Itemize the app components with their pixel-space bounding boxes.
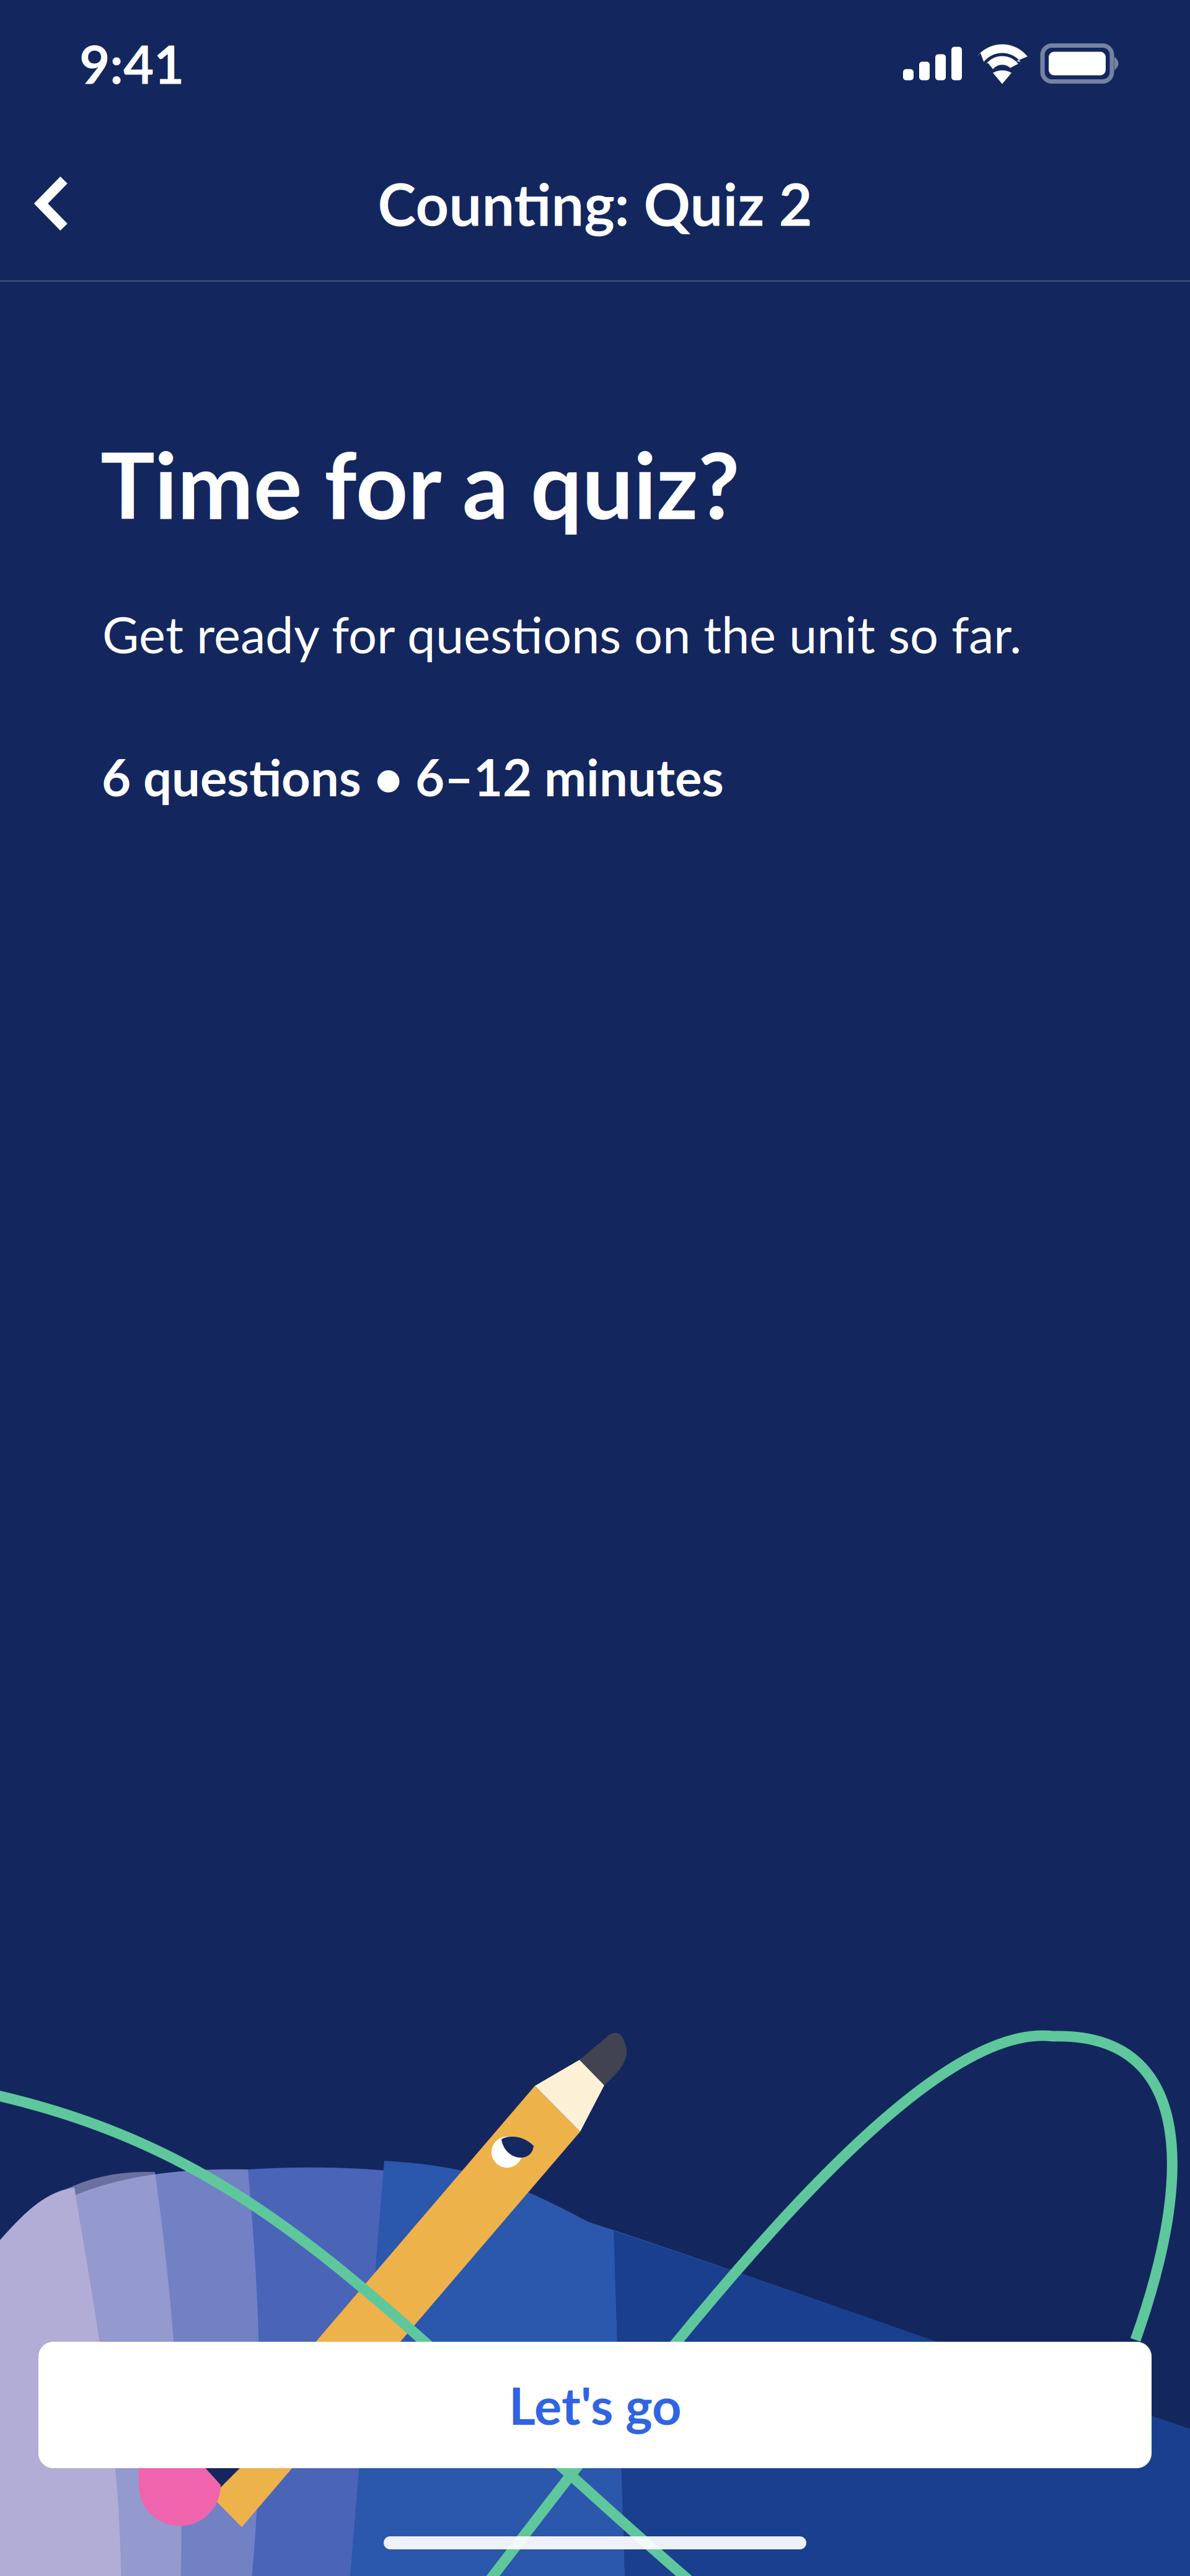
button[interactable]: Let's go [38, 2342, 1152, 2468]
staticText: Get ready for questions on the unit so f… [102, 604, 1021, 664]
staticText: Counting: Quiz 2 [378, 169, 812, 238]
staticText: Let's go [509, 2374, 681, 2436]
staticText: 6 questions • 6–12 minutes [102, 746, 724, 807]
staticText: 9:41 [79, 32, 184, 95]
button[interactable]: Back [0, 160, 105, 247]
staticText: Time for a quiz? [100, 429, 739, 538]
